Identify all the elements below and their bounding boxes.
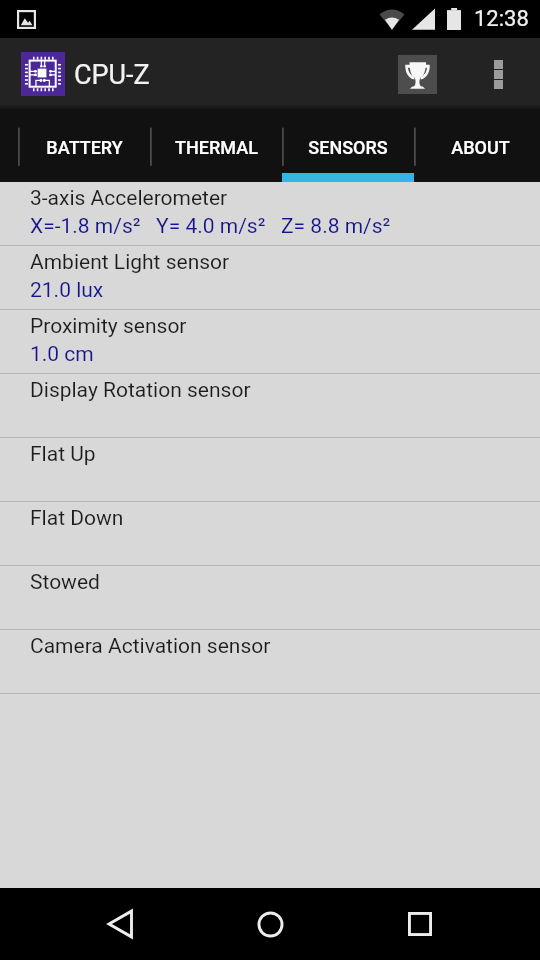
button[interactable]: More options [476,52,520,96]
button[interactable]: Flat Up [0,438,540,502]
staticText: 3-axis Accelerometer [30,186,228,211]
staticText: Proximity sensor [30,314,187,339]
button[interactable]: 3-axis Accelerometer [0,182,540,246]
staticText: Ambient Light sensor [30,250,230,275]
button[interactable]: THERMAL [150,110,282,182]
staticText: 21.0 lux [30,278,104,303]
button[interactable]: Recent apps [366,888,474,960]
staticText: Camera Activation sensor [30,634,271,659]
staticText: X=-1.8 m/s² Y= 4.0 m/s² Z= 8.8 m/s² [30,214,391,239]
button[interactable]: SENSORS [282,110,414,182]
staticText: 12:38 [474,6,529,32]
button[interactable]: BATTERY [18,110,150,182]
staticText: 1.0 cm [30,342,94,367]
staticText: Flat Up [30,442,96,467]
staticText: Flat Down [30,506,124,531]
button[interactable]: Camera Activation sensor [0,630,540,694]
button[interactable]: Display Rotation sensor [0,374,540,438]
button[interactable]: Stowed [0,566,540,630]
staticText: CPU-Z [74,59,150,91]
button[interactable]: Proximity sensor [0,310,540,374]
staticText: BATTERY [46,137,123,158]
button[interactable]: Flat Down [0,502,540,566]
staticText: ABOUT [451,137,510,158]
button[interactable]: Upgrade to Pro [398,55,437,94]
staticText: THERMAL [175,137,258,158]
staticText: Display Rotation sensor [30,378,251,403]
button[interactable]: Back [66,888,174,960]
button[interactable]: Home [216,888,324,960]
button[interactable]: ABOUT [414,110,540,182]
staticText: Stowed [30,570,100,595]
button[interactable]: Ambient Light sensor [0,246,540,310]
staticText: SENSORS [308,137,388,158]
